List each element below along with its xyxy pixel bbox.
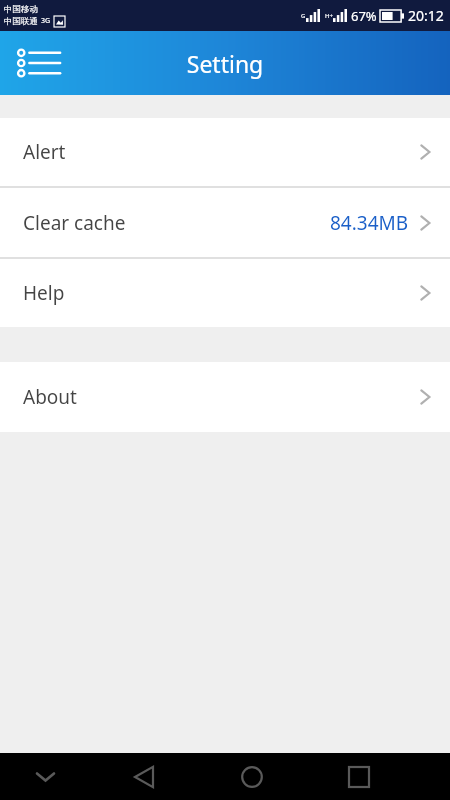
button[interactable]: Recent apps [305,753,412,800]
staticText: G [301,12,306,20]
button[interactable]: Back [90,753,198,800]
staticText: 3G [41,16,51,26]
button[interactable]: Help [0,259,450,327]
staticText: Clear cache [23,210,126,236]
staticText: 84.34MB [330,210,409,236]
button[interactable]: Home [198,753,305,800]
button[interactable]: Clear cache [0,188,450,257]
staticText: Help [23,280,65,306]
button[interactable]: Hide [0,753,90,800]
staticText: 67% [351,7,377,25]
staticText: 20:12 [408,6,444,25]
staticText: About [23,384,77,410]
staticText: 中国移动 [4,4,38,15]
button[interactable]: Alert [0,118,450,186]
button[interactable]: About [0,362,450,432]
staticText: Setting [0,48,450,79]
staticText: H+ [325,12,333,20]
button[interactable]: Menu [14,41,76,85]
staticText: 中国联通 [4,15,41,27]
staticText: Alert [23,139,66,165]
